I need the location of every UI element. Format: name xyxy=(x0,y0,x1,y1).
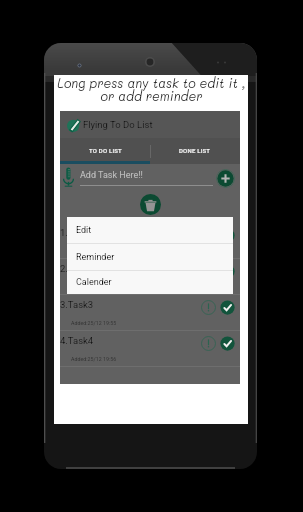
staticText: Long press any task to edit it , or add … xyxy=(57,75,246,105)
button[interactable]: Set priority xyxy=(201,300,216,315)
button[interactable]: Delete all tasks xyxy=(140,194,161,215)
button[interactable]: Mark as done xyxy=(220,300,235,315)
button[interactable]: 4.Task4 xyxy=(60,331,240,367)
staticText: Add Task Here!! xyxy=(80,170,143,181)
button[interactable]: Voice input xyxy=(63,167,74,187)
button[interactable]: 1.Task1 xyxy=(60,223,240,259)
button[interactable]: Edit xyxy=(67,217,233,243)
button[interactable]: 3.Task3 xyxy=(60,295,240,331)
staticText: Added:25/12 19:54 xyxy=(71,284,117,290)
button[interactable]: Reminder xyxy=(67,244,233,270)
staticText: 2.Task2 xyxy=(60,263,94,274)
staticText: 1.Task1 xyxy=(60,227,94,238)
button[interactable]: Add task xyxy=(216,169,235,188)
button[interactable]: Mark as done xyxy=(220,336,235,351)
button[interactable]: Set priority xyxy=(201,336,216,351)
staticText: 3.Task3 xyxy=(60,299,94,310)
staticText: Added:25/12 19:56 xyxy=(71,356,117,362)
staticText: Added:25/12 19:52 xyxy=(71,248,117,254)
button[interactable]: Set priority xyxy=(201,264,216,279)
staticText: Edit xyxy=(76,225,92,236)
staticText: TO DO LIST xyxy=(89,147,122,154)
staticText: 4.Task4 xyxy=(60,335,94,346)
button[interactable]: TO DO LIST xyxy=(60,138,150,164)
staticText: Reminder xyxy=(76,252,115,263)
button[interactable]: DONE LIST xyxy=(150,138,240,164)
button[interactable]: Mark as done xyxy=(220,264,235,279)
button[interactable]: 2.Task2 xyxy=(60,259,240,295)
button[interactable]: Mark as done xyxy=(220,228,235,243)
staticText: Flying To Do List xyxy=(83,119,153,130)
staticText: Calender xyxy=(76,277,112,288)
button[interactable]: Calender xyxy=(67,271,233,294)
staticText: Added:25/12 19:55 xyxy=(71,320,117,326)
staticText: DONE LIST xyxy=(179,147,211,154)
